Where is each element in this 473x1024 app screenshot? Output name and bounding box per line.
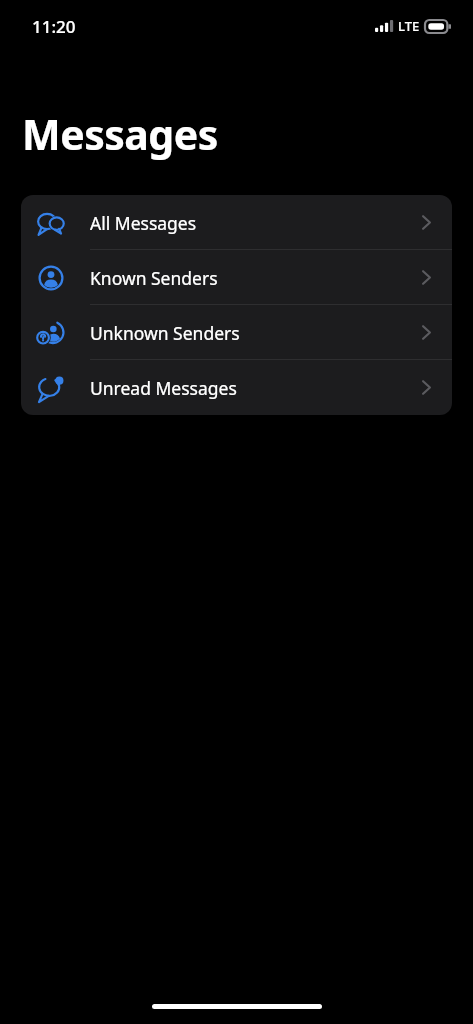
button[interactable]: All Messages — [21, 195, 452, 250]
staticText: 11:20 — [32, 15, 76, 38]
staticText: Known Senders — [90, 266, 218, 290]
button[interactable]: Known Senders — [21, 250, 452, 305]
staticText: Unread Messages — [90, 376, 237, 400]
staticText: Unknown Senders — [90, 321, 240, 345]
button[interactable]: Unread Messages — [21, 360, 452, 415]
button[interactable]: Unknown Senders — [21, 305, 452, 360]
staticText: All Messages — [90, 211, 197, 235]
staticText: LTE — [398, 17, 420, 35]
staticText: Messages — [22, 106, 218, 162]
